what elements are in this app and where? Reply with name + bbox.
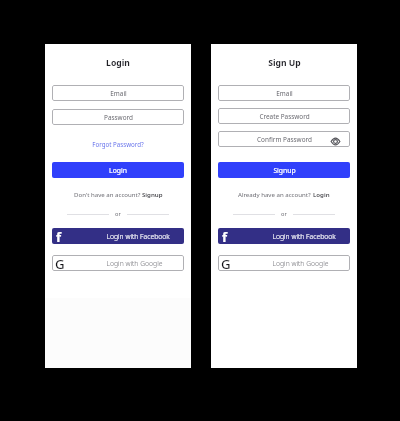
staticText: Email [110, 89, 127, 98]
staticText: Login [109, 166, 127, 175]
staticText: Already have an account? [238, 190, 313, 198]
staticText: Login [313, 190, 330, 198]
staticText: Sign Up [268, 57, 301, 69]
button[interactable]: Show password [330, 137, 340, 146]
staticText: f [56, 228, 62, 244]
staticText: Signup [142, 190, 163, 198]
staticText: Login with Facebook [272, 232, 336, 241]
staticText: G [55, 255, 65, 271]
button[interactable]: Login with Facebook [52, 228, 184, 244]
staticText: Login with Google [106, 259, 163, 268]
button[interactable]: Login [52, 162, 184, 178]
staticText: or [281, 210, 287, 218]
staticText: Login [106, 57, 130, 69]
button[interactable]: Login with Google [52, 255, 184, 271]
button[interactable]: Confirm Password [218, 131, 350, 147]
button[interactable]: Signup [218, 162, 350, 178]
staticText: Don't have an account? [74, 190, 142, 198]
staticText: or [115, 210, 121, 218]
staticText: Signup [273, 166, 296, 175]
button[interactable]: Login with Google [218, 255, 350, 271]
button[interactable]: Create Password [218, 108, 350, 124]
button[interactable]: Login with Facebook [218, 228, 350, 244]
button[interactable]: Email [218, 85, 350, 101]
button[interactable]: Already have an account? [238, 190, 330, 198]
button[interactable]: Don't have an account? [74, 190, 163, 198]
button[interactable]: Forgot Password? [52, 140, 184, 148]
staticText: Create Password [259, 112, 310, 121]
staticText: Password [104, 113, 133, 122]
staticText: G [221, 255, 231, 271]
button[interactable]: Email [52, 85, 184, 101]
staticText: Login with Facebook [106, 232, 170, 241]
staticText: f [222, 228, 228, 244]
button[interactable]: Password [52, 109, 184, 125]
staticText: Email [276, 89, 293, 98]
staticText: Confirm Password [257, 135, 312, 144]
staticText: Login with Google [272, 259, 329, 268]
